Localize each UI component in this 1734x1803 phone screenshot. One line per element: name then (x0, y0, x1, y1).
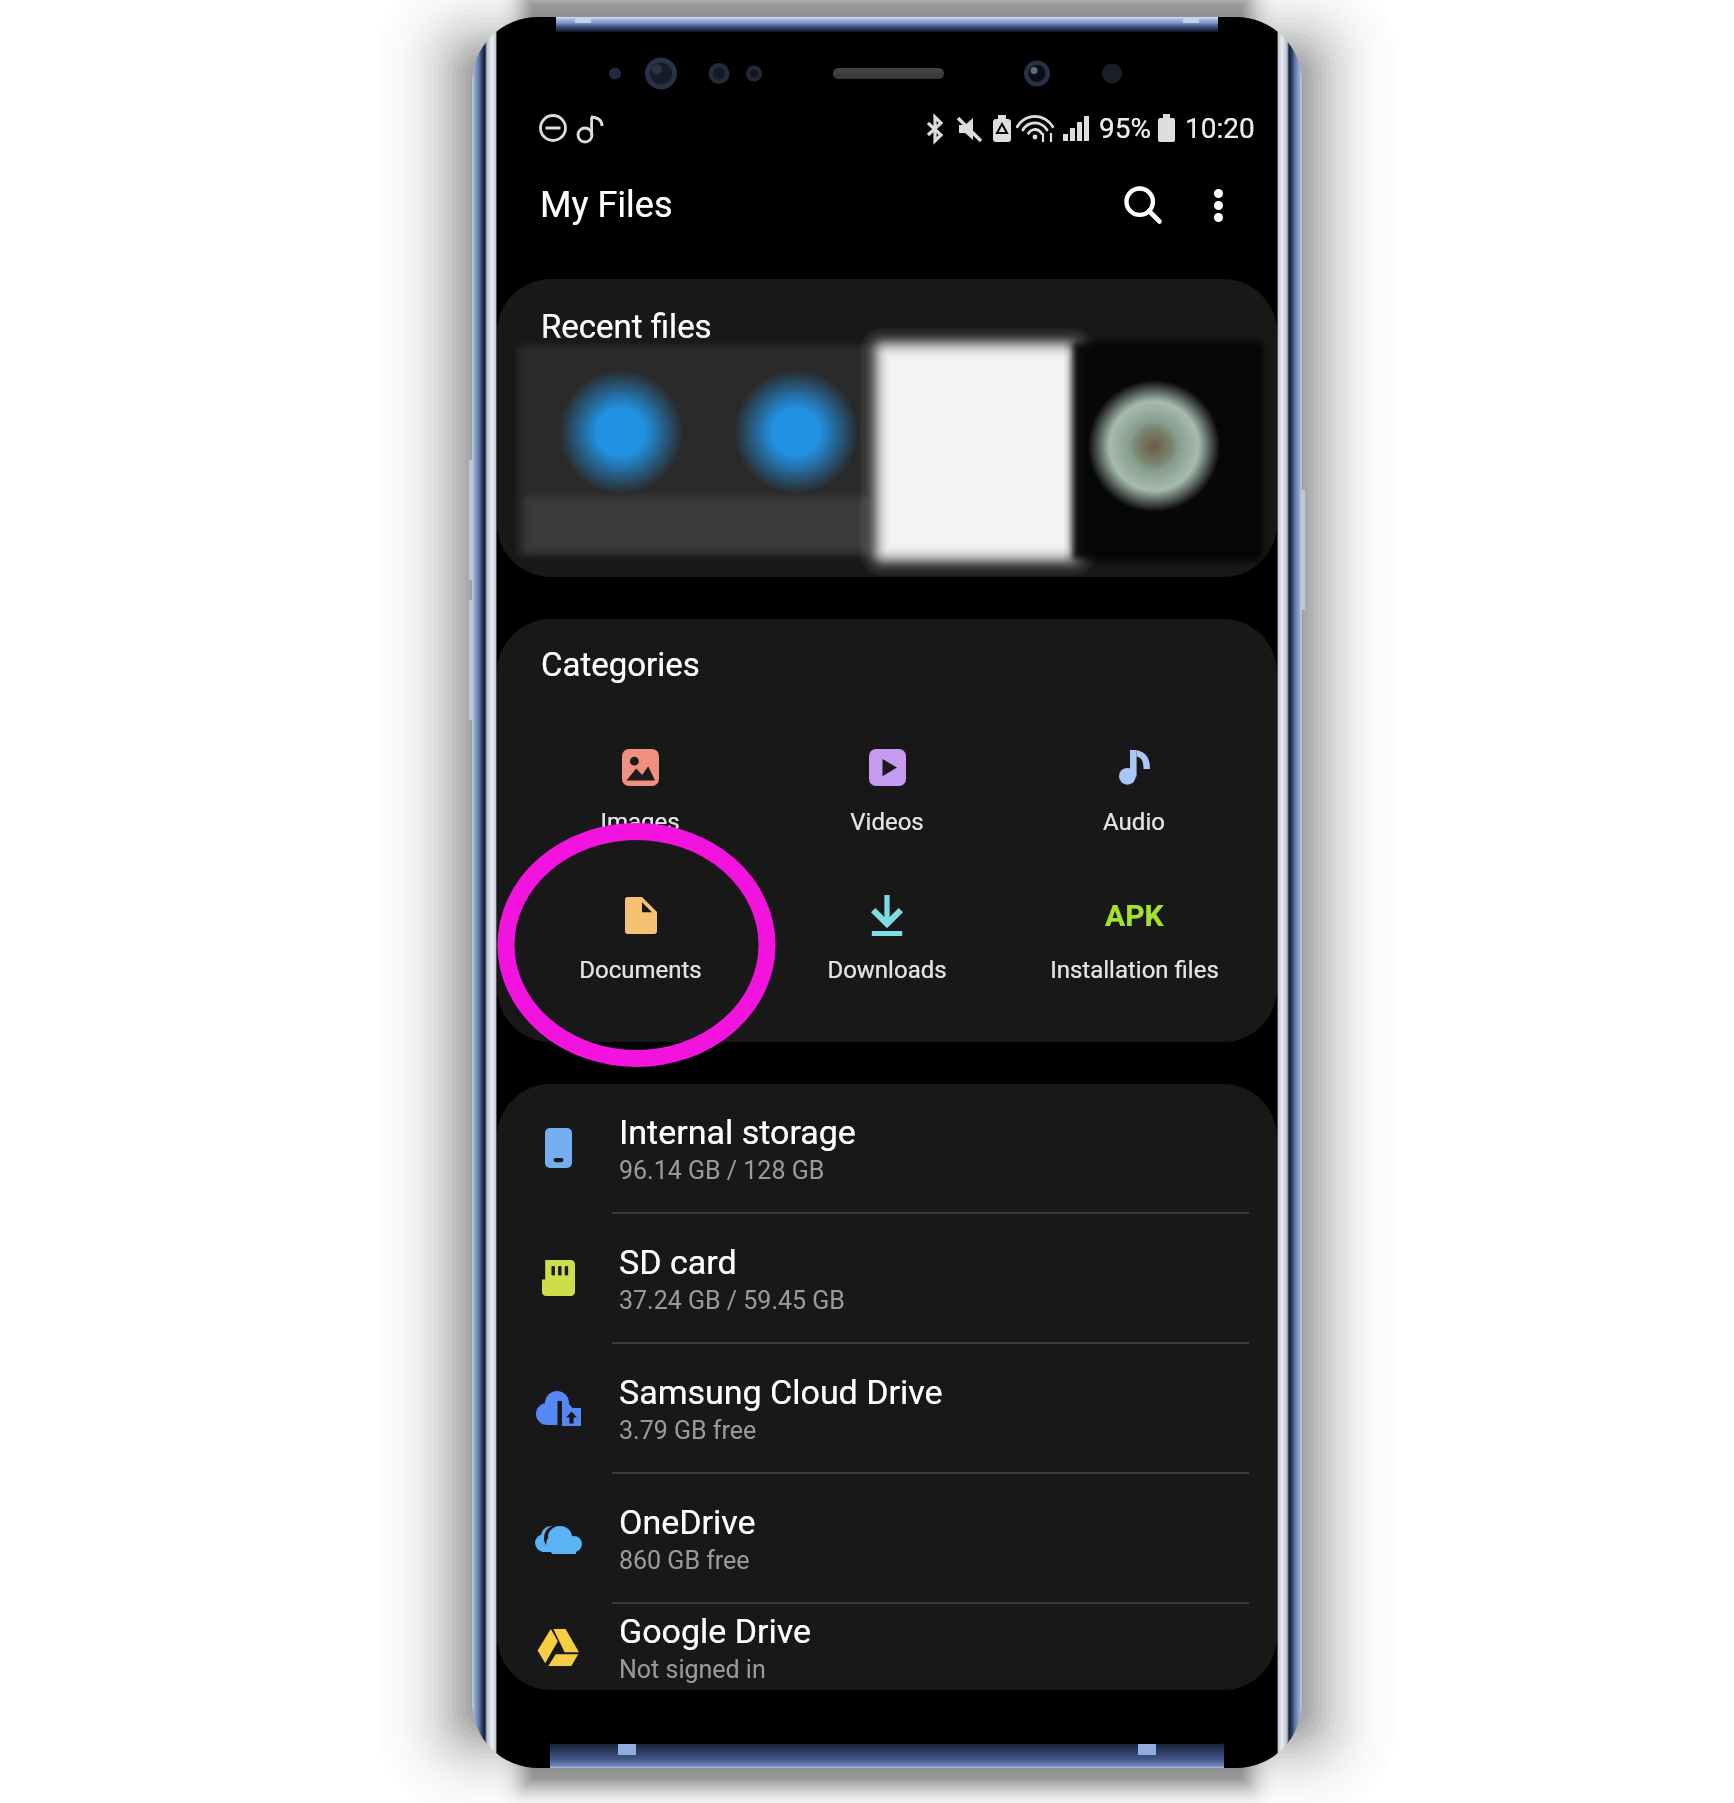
staticText: 95% (1099, 112, 1151, 145)
button[interactable]: Samsung Cloud Drive (497, 1344, 1277, 1472)
button[interactable]: Images (520, 744, 760, 864)
button[interactable]: Internal storage (497, 1084, 1277, 1212)
button[interactable]: Google Drive (497, 1604, 1277, 1690)
button[interactable]: More options (1170, 157, 1266, 253)
staticText: 10:20 (1185, 112, 1255, 145)
staticText: Google Drive (619, 1611, 812, 1651)
staticText: Samsung Cloud Drive (619, 1372, 943, 1412)
staticText: Installation files (1050, 956, 1219, 984)
staticText: Documents (579, 956, 702, 984)
button[interactable]: Documents (520, 892, 760, 1012)
button[interactable]: Audio (1014, 744, 1254, 864)
staticText: OneDrive (619, 1502, 756, 1542)
staticText: Internal storage (619, 1112, 856, 1152)
staticText: Downloads (827, 956, 947, 984)
staticText: Recent files (541, 307, 712, 346)
button[interactable]: Search (1095, 157, 1191, 253)
button[interactable]: Recent files (497, 279, 1277, 577)
staticText: Categories (541, 645, 700, 684)
staticText: My Files (540, 184, 673, 226)
staticText: Audio (1103, 808, 1165, 836)
staticText: Videos (850, 808, 924, 836)
staticText: 37.24 GB / 59.45 GB (619, 1286, 845, 1315)
button[interactable]: Downloads (767, 892, 1007, 1012)
staticText: 860 GB free (619, 1546, 750, 1575)
button[interactable]: Videos (767, 744, 1007, 864)
button[interactable]: SD card (497, 1214, 1277, 1342)
button[interactable]: OneDrive (497, 1474, 1277, 1602)
staticText: SD card (619, 1242, 737, 1282)
staticText: 3.79 GB free (619, 1416, 757, 1445)
staticText: Not signed in (619, 1655, 766, 1684)
staticText: APK (1105, 898, 1164, 933)
button[interactable]: APK (1014, 892, 1254, 1012)
staticText: 96.14 GB / 128 GB (619, 1156, 825, 1185)
staticText: Images (600, 808, 680, 836)
